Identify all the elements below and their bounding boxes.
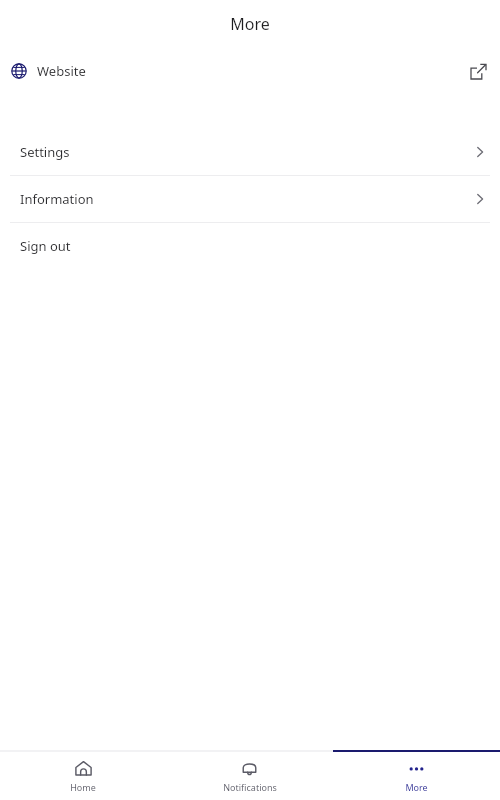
button[interactable]: Notifications xyxy=(166,752,333,800)
button[interactable]: Website xyxy=(0,48,500,94)
staticText: Sign out xyxy=(20,237,71,255)
staticText: Website xyxy=(37,62,86,80)
staticText: Notifications xyxy=(223,781,277,793)
staticText: More xyxy=(405,781,428,793)
staticText: More xyxy=(230,13,270,35)
button[interactable]: Home xyxy=(0,752,166,800)
staticText: Settings xyxy=(20,143,70,161)
button[interactable]: Information xyxy=(0,176,500,222)
other: Open website in browser xyxy=(468,61,488,81)
button[interactable]: Sign out xyxy=(0,223,500,269)
staticText: Home xyxy=(70,781,96,793)
button[interactable]: Settings xyxy=(0,129,500,175)
button[interactable]: More xyxy=(333,752,500,800)
staticText: Information xyxy=(20,190,94,208)
